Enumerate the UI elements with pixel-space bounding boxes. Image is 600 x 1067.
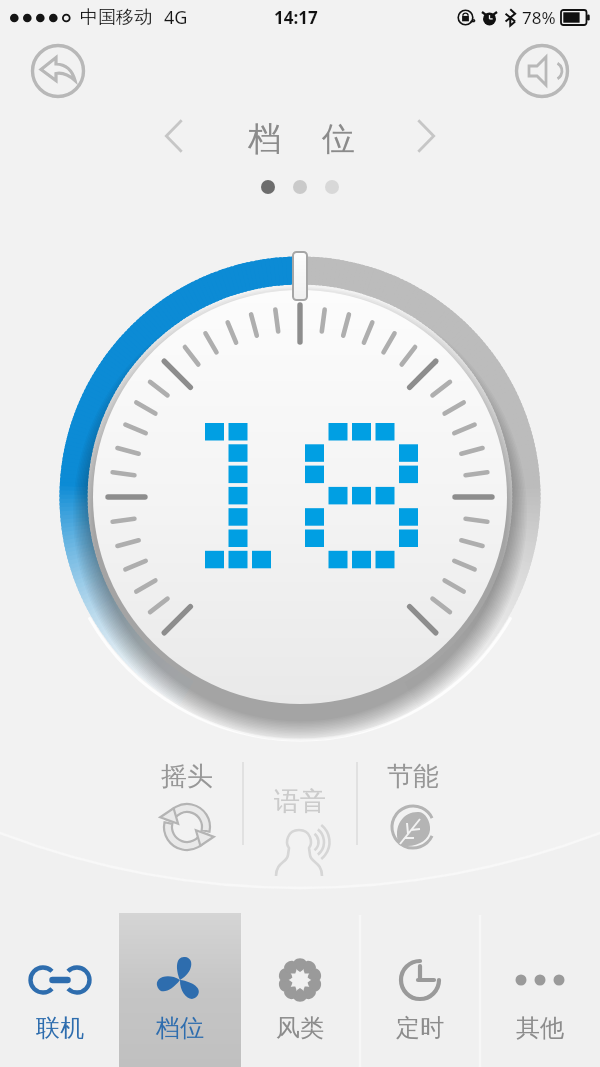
button[interactable]: Sound — [512, 41, 572, 101]
staticText: 定时 — [396, 1013, 444, 1043]
staticText: 位 — [322, 118, 355, 160]
button[interactable]: 档位 — [120, 913, 240, 1067]
staticText: 中国移动 — [80, 6, 152, 29]
button[interactable]: Next — [398, 108, 454, 164]
staticText: 其他 — [516, 1013, 564, 1043]
button[interactable]: 定时 — [360, 913, 480, 1067]
button[interactable]: 语音 — [274, 785, 326, 878]
staticText: 档位 — [156, 1013, 204, 1043]
staticText: 14:17 — [274, 6, 318, 29]
button[interactable]: 联机 — [0, 913, 120, 1067]
staticText: 78% — [522, 6, 556, 29]
staticText: 联机 — [36, 1013, 84, 1043]
staticText: 档 — [248, 118, 281, 160]
button[interactable]: 风类 — [240, 913, 360, 1067]
staticText: 风类 — [276, 1013, 324, 1043]
staticText: 节能 — [387, 760, 439, 793]
button[interactable]: 其他 — [480, 913, 600, 1067]
staticText: 4G — [164, 5, 188, 30]
button[interactable]: 摇头 — [161, 760, 213, 853]
staticText: 摇头 — [161, 760, 213, 793]
button[interactable]: 节能 — [387, 760, 439, 853]
button[interactable]: Back — [28, 41, 88, 101]
button[interactable]: Previous — [146, 108, 202, 164]
staticText: 语音 — [274, 785, 326, 818]
